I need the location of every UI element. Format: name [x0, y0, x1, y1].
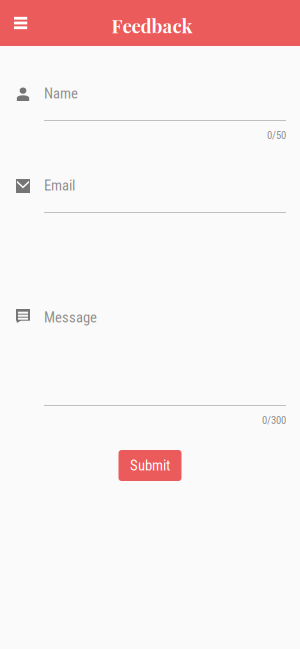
staticText: Message [44, 309, 97, 326]
staticText: Feedback [111, 13, 192, 38]
staticText: Name [44, 85, 78, 102]
staticText: 0/50 [267, 129, 286, 141]
staticText: Email [44, 177, 75, 194]
button[interactable]: Menu [0, 0, 44, 46]
button[interactable]: Submit [118, 450, 181, 481]
staticText: Submit [130, 457, 170, 474]
staticText: 0/300 [262, 414, 286, 426]
